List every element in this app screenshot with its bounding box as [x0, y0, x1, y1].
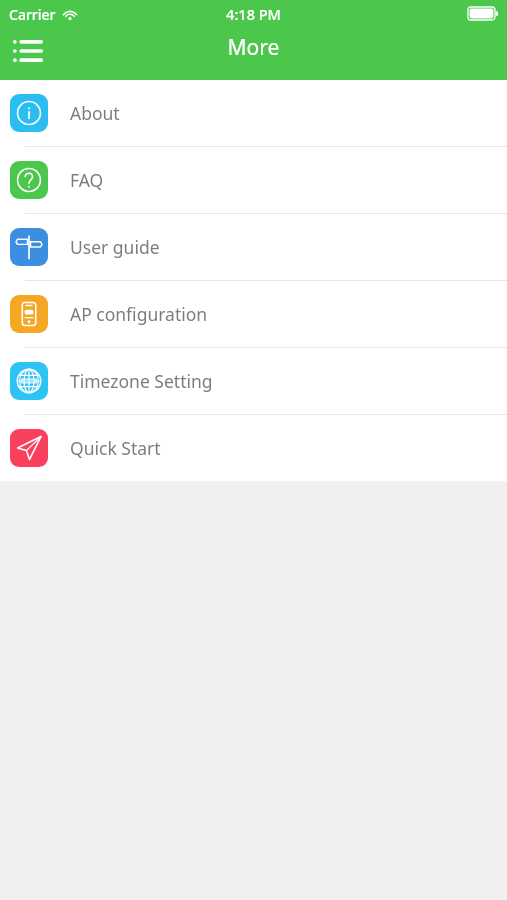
staticText: 4:18 PM: [0, 4, 507, 24]
staticText: AP configuration: [70, 302, 208, 326]
button[interactable]: User guide: [0, 214, 507, 280]
button[interactable]: About: [0, 80, 507, 146]
button[interactable]: Timezone Setting: [0, 348, 507, 414]
button[interactable]: Quick Start: [0, 415, 507, 481]
staticText: Timezone Setting: [70, 369, 213, 393]
staticText: FAQ: [70, 168, 104, 192]
staticText: More: [0, 33, 507, 62]
button[interactable]: FAQ: [0, 147, 507, 213]
staticText: Carrier: [9, 5, 56, 24]
staticText: Quick Start: [70, 436, 161, 460]
staticText: About: [70, 101, 120, 125]
staticText: User guide: [70, 235, 160, 259]
button[interactable]: Menu: [0, 27, 56, 75]
button[interactable]: AP configuration: [0, 281, 507, 347]
